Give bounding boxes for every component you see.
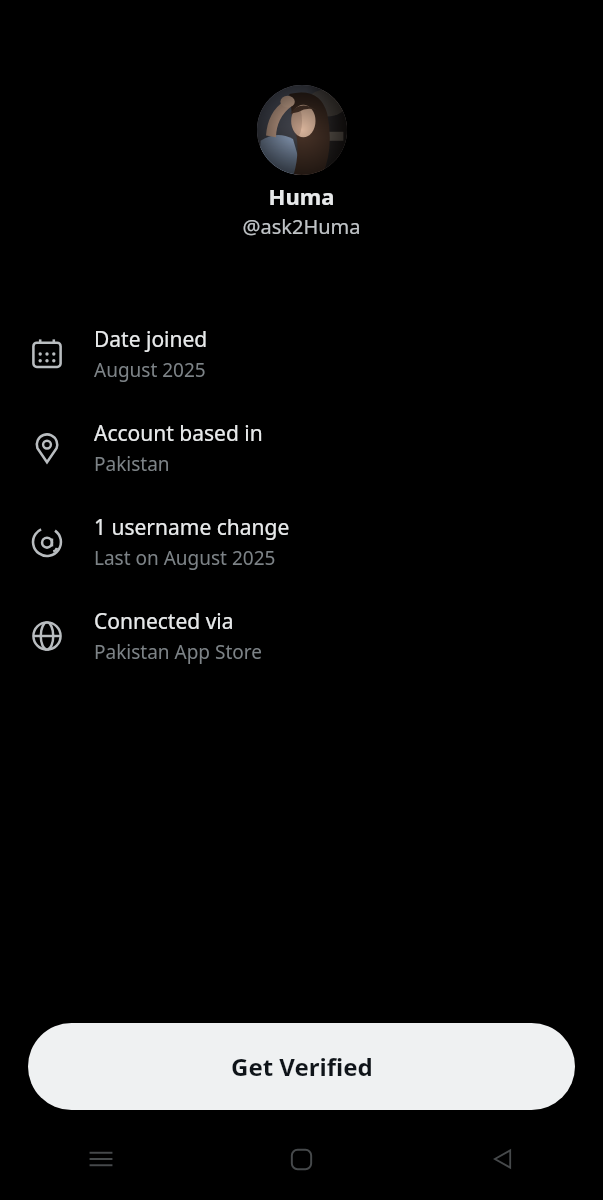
staticText: Get Verified	[231, 1050, 373, 1083]
button[interactable]: Home	[201, 1136, 402, 1182]
staticText: Pakistan	[94, 451, 170, 477]
button[interactable]: Profile photo	[257, 85, 347, 175]
staticText: Date joined	[94, 325, 208, 354]
staticText: Connected via	[94, 607, 234, 636]
button[interactable]: Calendar	[0, 307, 603, 401]
staticText: Pakistan App Store	[94, 639, 262, 665]
staticText: Last on August 2025	[94, 545, 276, 571]
staticText: @ask2Huma	[0, 213, 603, 240]
other: Username	[0, 495, 94, 589]
button[interactable]: Get Verified	[28, 1023, 575, 1110]
button[interactable]: Globe	[0, 589, 603, 683]
staticText: Account based in	[94, 419, 263, 448]
staticText: Huma	[0, 181, 603, 211]
staticText: August 2025	[94, 357, 206, 383]
staticText: 1 username change	[94, 513, 290, 542]
other: Globe	[0, 589, 94, 683]
button[interactable]: Username	[0, 495, 603, 589]
button[interactable]: Back	[402, 1136, 603, 1182]
other: Location	[0, 401, 94, 495]
button[interactable]: Recents	[0, 1136, 201, 1182]
other: Calendar	[0, 307, 94, 401]
button[interactable]: Location	[0, 401, 603, 495]
